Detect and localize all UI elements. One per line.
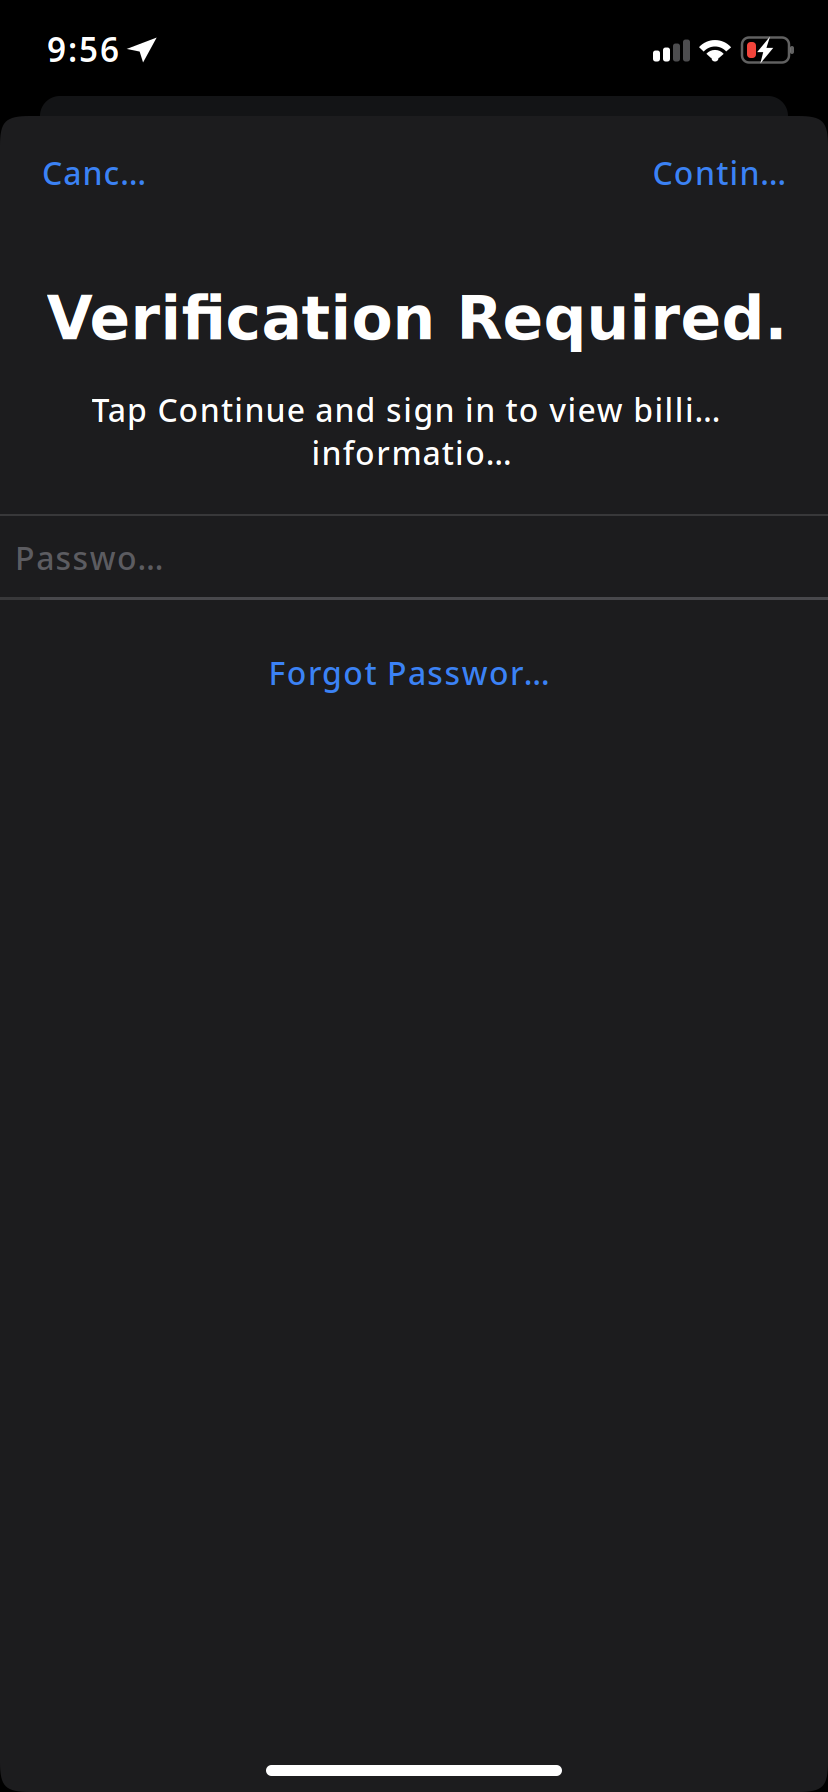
- staticText: information.: [311, 431, 517, 474]
- button[interactable]: Continue: [567, 151, 787, 194]
- staticText: Password: [15, 536, 172, 579]
- staticText: Cancel: [42, 151, 149, 194]
- staticText: Tap Continue and sign in to view billing: [92, 388, 736, 431]
- button[interactable]: Forgot Password?: [0, 651, 828, 694]
- button[interactable]: Cancel: [42, 151, 222, 194]
- staticText: Continue: [653, 151, 800, 194]
- staticText: 9:56: [47, 27, 119, 71]
- staticText: Verification Required.: [46, 284, 787, 353]
- staticText: Forgot Password?: [268, 651, 559, 694]
